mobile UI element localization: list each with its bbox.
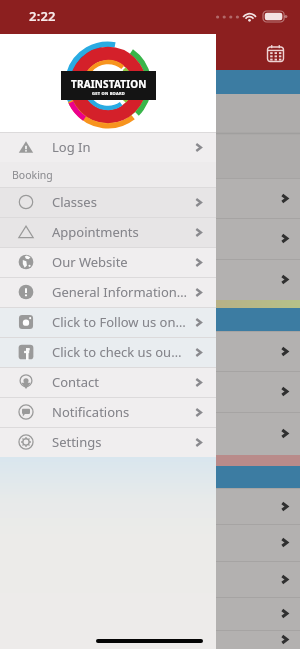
button[interactable]: Calendar <box>260 37 290 67</box>
button[interactable] <box>0 630 300 649</box>
button[interactable]: Click to check us ou… <box>0 337 216 367</box>
button[interactable] <box>0 412 300 455</box>
button[interactable] <box>0 259 300 300</box>
staticText: Contact <box>52 373 100 391</box>
button[interactable]: Appointments <box>0 217 216 247</box>
button[interactable] <box>0 178 300 218</box>
button[interactable]: Notifications <box>0 397 216 427</box>
button[interactable]: Settings <box>0 427 216 457</box>
staticText: Log In <box>52 138 91 156</box>
button[interactable] <box>0 371 300 412</box>
staticText: TRAINSTATION <box>71 77 147 91</box>
button[interactable]: Contact <box>0 367 216 397</box>
staticText: Our Website <box>52 253 128 271</box>
button[interactable] <box>0 331 300 371</box>
staticText: Classes <box>52 193 97 211</box>
button[interactable] <box>0 524 300 561</box>
button[interactable] <box>0 488 300 524</box>
staticText: Settings <box>52 433 102 451</box>
staticText: Booking <box>12 168 53 182</box>
button[interactable] <box>0 561 300 597</box>
button[interactable] <box>0 597 300 630</box>
button[interactable]: Our Website <box>0 247 216 277</box>
button[interactable]: Log In <box>0 132 216 162</box>
button[interactable] <box>0 218 300 259</box>
staticText: Appointments <box>52 223 139 241</box>
button[interactable]: Click to Follow us on… <box>0 307 216 337</box>
staticText: General Information… <box>52 283 188 301</box>
button[interactable]: General Information… <box>0 277 216 307</box>
button[interactable]: Classes <box>0 187 216 217</box>
staticText: 2:22 <box>29 7 56 25</box>
staticText: Click to Follow us on… <box>52 313 186 331</box>
staticText: Click to check us ou… <box>52 343 182 361</box>
staticText: GET ON BOARD <box>92 91 126 96</box>
staticText: Notifications <box>52 403 130 421</box>
